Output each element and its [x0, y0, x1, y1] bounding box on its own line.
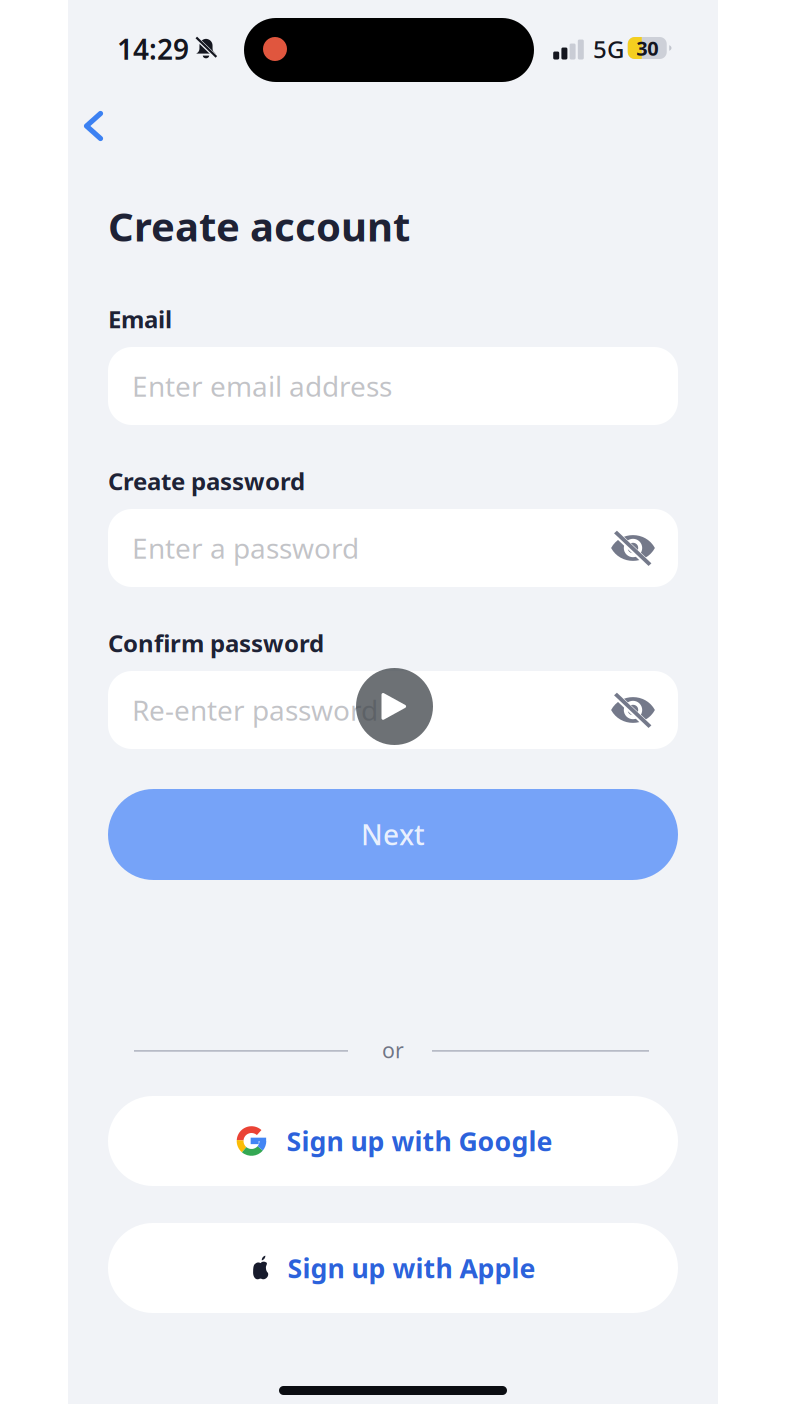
staticText: or [382, 1036, 404, 1064]
button[interactable]: Sign up with Apple [108, 1223, 678, 1313]
staticText: Email [108, 303, 172, 335]
staticText: Next [361, 816, 425, 853]
staticText: Sign up with Apple [287, 1250, 535, 1286]
staticText: Sign up with Google [286, 1123, 552, 1159]
staticText: Create password [108, 465, 305, 497]
staticText: Re-enter password [132, 691, 378, 729]
button[interactable]: Next [108, 789, 678, 880]
staticText: Enter a password [132, 529, 359, 567]
button[interactable]: Sign up with Google [108, 1096, 678, 1186]
staticText: 5G [593, 33, 624, 65]
button[interactable]: Back [70, 92, 154, 160]
staticText: Enter email address [132, 367, 392, 405]
staticText: Confirm password [108, 627, 324, 659]
button[interactable]: Show password [605, 524, 661, 572]
staticText: 14:29 [117, 30, 189, 68]
staticText: 30 [636, 35, 658, 61]
staticText: Create account [108, 199, 410, 252]
button[interactable]: Show password [605, 686, 661, 734]
